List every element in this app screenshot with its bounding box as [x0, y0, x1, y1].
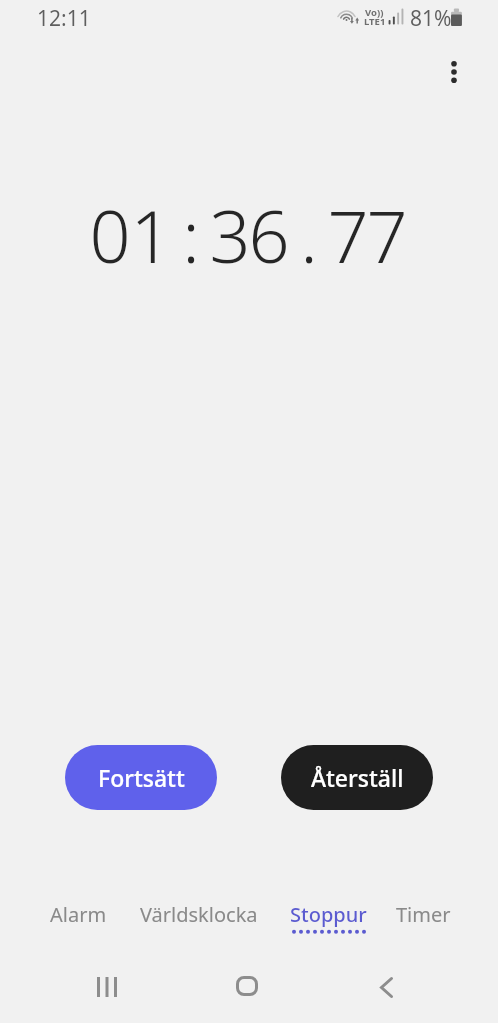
staticText: 0 [89, 186, 131, 284]
button[interactable]: Fortsätt [65, 745, 217, 810]
staticText: 12:11 [37, 4, 91, 33]
staticText: Stoppur [290, 901, 367, 928]
staticText: : [182, 186, 200, 284]
staticText: 3 [209, 186, 251, 284]
staticText: Alarm [50, 901, 107, 928]
button[interactable]: Home [223, 962, 271, 1010]
staticText: 1 [130, 186, 172, 284]
staticText: 7 [327, 186, 369, 284]
staticText: 7 [366, 186, 408, 284]
staticText: LTE1 [364, 15, 386, 28]
button[interactable]: Stoppur [268, 901, 388, 953]
button[interactable]: Recent apps [83, 963, 131, 1011]
button[interactable]: Alarm [18, 901, 138, 953]
button[interactable]: Back [362, 963, 410, 1011]
button[interactable]: Återställ [281, 745, 433, 810]
button[interactable]: More options [434, 52, 474, 92]
staticText: 81% [410, 4, 452, 33]
button[interactable]: Timer [363, 901, 483, 953]
staticText: Timer [396, 901, 451, 928]
staticText: Återställ [311, 762, 404, 793]
button[interactable]: Världsklocka [139, 901, 259, 953]
staticText: Världsklocka [140, 901, 258, 928]
staticText: . [300, 186, 318, 284]
staticText: Fortsätt [98, 762, 185, 793]
staticText: Vo)) [365, 6, 384, 19]
staticText: 6 [248, 186, 290, 284]
